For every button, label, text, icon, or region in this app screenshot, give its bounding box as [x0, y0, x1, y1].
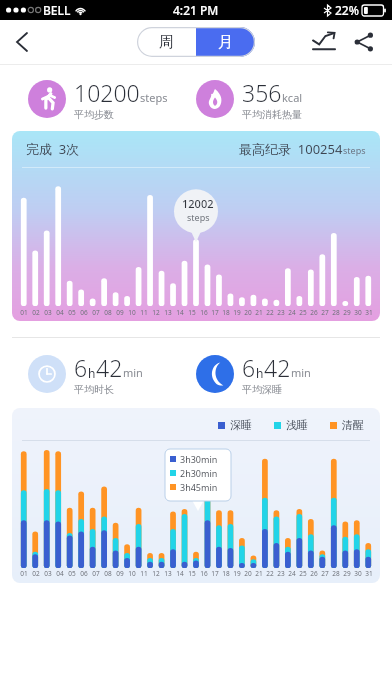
button[interactable]: 6	[196, 352, 392, 396]
staticText: 27	[321, 308, 329, 317]
staticText: min	[291, 365, 311, 380]
staticText: 6	[242, 352, 256, 383]
button[interactable]: Trends	[304, 22, 344, 62]
staticText: 10200	[74, 77, 140, 108]
staticText: 20	[244, 308, 252, 317]
staticText: 平均步数	[74, 108, 114, 121]
staticText: 21	[255, 569, 263, 578]
staticText: 02	[32, 569, 40, 578]
button[interactable]: 10200	[28, 77, 196, 121]
staticText: 31	[365, 569, 373, 578]
staticText: 01	[20, 569, 28, 578]
staticText: 6	[74, 352, 88, 383]
button[interactable]: 6	[28, 352, 196, 396]
staticText: 07	[92, 569, 100, 578]
button[interactable]: 周	[137, 27, 196, 57]
staticText: 深睡	[230, 418, 252, 432]
staticText: 03	[44, 308, 52, 317]
staticText: 06	[80, 308, 88, 317]
staticText: steps	[140, 90, 168, 105]
staticText: 月	[218, 33, 233, 52]
staticText: kcal	[282, 90, 303, 105]
staticText: 08	[104, 308, 112, 317]
staticText: 30	[354, 569, 362, 578]
staticText: 2h30min	[180, 467, 218, 479]
button[interactable]: Share	[344, 22, 384, 62]
staticText: 16	[200, 569, 208, 578]
staticText: 22%	[335, 2, 359, 18]
staticText: 20	[244, 569, 252, 578]
staticText: steps	[187, 211, 210, 223]
staticText: 23	[277, 308, 285, 317]
staticText: 08	[104, 569, 112, 578]
staticText: 平均时长	[74, 383, 114, 396]
staticText: 13	[164, 569, 172, 578]
staticText: 17	[211, 569, 219, 578]
staticText: 12	[152, 308, 160, 317]
staticText: 04	[56, 569, 64, 578]
staticText: 12	[152, 569, 160, 578]
staticText: 平均消耗热量	[242, 108, 302, 121]
staticText: 3h45min	[180, 481, 218, 493]
staticText: 19	[233, 569, 241, 578]
staticText: 14	[176, 308, 184, 317]
staticText: 18	[222, 308, 230, 317]
staticText: 06	[80, 569, 88, 578]
staticText: 29	[343, 308, 351, 317]
staticText: 4:21 PM	[173, 2, 219, 18]
staticText: 16	[200, 308, 208, 317]
staticText: 19	[233, 308, 241, 317]
staticText: 完成 3次	[26, 140, 80, 158]
button[interactable]: 深睡	[12, 408, 380, 583]
staticText: h	[256, 365, 264, 381]
staticText: 29	[343, 569, 351, 578]
staticText: 02	[32, 308, 40, 317]
staticText: min	[123, 365, 143, 380]
staticText: 356	[242, 77, 282, 108]
staticText: 25	[299, 308, 307, 317]
staticText: 10	[128, 308, 136, 317]
staticText: 清醒	[342, 418, 364, 432]
staticText: 12002	[182, 196, 214, 211]
button[interactable]: 月	[196, 27, 255, 57]
button[interactable]: Back	[0, 20, 44, 64]
staticText: 周	[159, 33, 174, 52]
staticText: 26	[310, 569, 318, 578]
staticText: 平均深睡	[242, 383, 282, 396]
staticText: 15	[188, 308, 196, 317]
staticText: 24	[288, 569, 296, 578]
button[interactable]: 完成 3次	[12, 131, 380, 321]
staticText: h	[88, 365, 96, 381]
staticText: 01	[20, 308, 28, 317]
button[interactable]: 356	[196, 77, 392, 121]
staticText: 09	[116, 569, 124, 578]
staticText: 25	[299, 569, 307, 578]
staticText: 30	[354, 308, 362, 317]
staticText: 28	[332, 308, 340, 317]
staticText: 05	[68, 308, 76, 317]
staticText: 22	[266, 308, 274, 317]
staticText: 09	[116, 308, 124, 317]
staticText: 最高纪录 100254	[239, 140, 343, 158]
staticText: 26	[310, 308, 318, 317]
staticText: 3h30min	[180, 453, 218, 465]
staticText: 23	[277, 569, 285, 578]
staticText: 31	[365, 308, 373, 317]
staticText: 42	[264, 352, 291, 383]
staticText: 11	[140, 569, 148, 578]
staticText: 浅睡	[286, 418, 308, 432]
staticText: 17	[211, 308, 219, 317]
staticText: BELL	[43, 2, 71, 18]
staticText: 05	[68, 569, 76, 578]
staticText: 14	[176, 569, 184, 578]
staticText: 21	[255, 308, 263, 317]
staticText: 42	[96, 352, 123, 383]
staticText: 13	[164, 308, 172, 317]
staticText: 18	[222, 569, 230, 578]
staticText: 04	[56, 308, 64, 317]
staticText: 11	[140, 308, 148, 317]
staticText: 22	[266, 569, 274, 578]
staticText: steps	[343, 144, 366, 156]
staticText: 28	[332, 569, 340, 578]
staticText: 27	[321, 569, 329, 578]
